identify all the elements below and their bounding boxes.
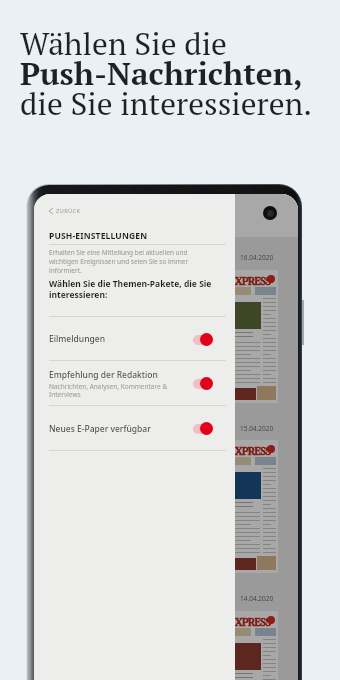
staticText: Wählen Sie die Themen-Pakete, die Sie in… <box>49 278 219 300</box>
button[interactable]: Zurück <box>49 207 81 214</box>
staticText: EXPRESS <box>229 444 271 459</box>
staticText: Eilmeldungen <box>49 333 105 345</box>
staticText: Erhalten Sie eine Mitteilung bei aktuell… <box>49 248 194 275</box>
staticText: PUSH-EINSTELLUNGEN <box>49 230 148 242</box>
staticText: Empfehlung der Redaktion <box>49 369 158 381</box>
staticText: 15.04.2020 <box>240 424 274 433</box>
staticText: 14.04.2020 <box>240 594 274 603</box>
button[interactable]: EXPRESS <box>221 440 278 573</box>
button[interactable]: Neues E-Paper verfügbar <box>49 406 226 451</box>
staticText: 16.04.2020 <box>240 253 274 262</box>
button[interactable]: Empfehlung der Redaktion <box>49 361 226 406</box>
staticText: EXPRESS <box>229 615 271 630</box>
button[interactable]: EXPRESS <box>221 611 278 680</box>
button[interactable]: Eilmeldungen <box>49 317 226 361</box>
staticText: ZURÜCK <box>56 207 81 214</box>
staticText: Nachrichten, Analysen, Kommentare & Inte… <box>49 382 175 399</box>
staticText: Wählen Sie die Push-Nachrichten, die Sie… <box>20 22 313 124</box>
button[interactable]: EXPRESS <box>221 270 278 403</box>
staticText: EXPRESS <box>229 274 271 289</box>
staticText: Neues E-Paper verfügbar <box>49 423 151 435</box>
